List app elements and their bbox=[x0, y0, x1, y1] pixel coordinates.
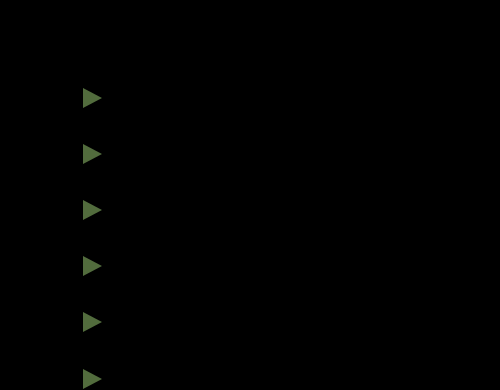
button[interactable]: Play Ambient Layer bbox=[73, 361, 109, 390]
button[interactable]: Play Field Notes bbox=[0, 126, 500, 182]
button[interactable]: Play Rehearsal Loop bbox=[0, 238, 500, 294]
button[interactable]: Play Voice Memo 14 bbox=[73, 304, 109, 340]
button[interactable]: Play Voice Memo 14 bbox=[0, 294, 500, 350]
button[interactable]: Play Field Notes bbox=[73, 136, 109, 172]
button[interactable]: Play Interview Take 2 bbox=[73, 192, 109, 228]
button[interactable]: Play Interview Take 2 bbox=[0, 182, 500, 238]
button[interactable]: Play Rehearsal Loop bbox=[73, 248, 109, 284]
button[interactable]: Play Morning Session bbox=[0, 70, 500, 126]
button[interactable]: Play Ambient Layer bbox=[0, 351, 500, 390]
button[interactable]: Play Morning Session bbox=[73, 80, 109, 116]
